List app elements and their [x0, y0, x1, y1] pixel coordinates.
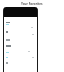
button[interactable] [4, 7, 37, 17]
staticText: Your Favorites [21, 2, 43, 6]
